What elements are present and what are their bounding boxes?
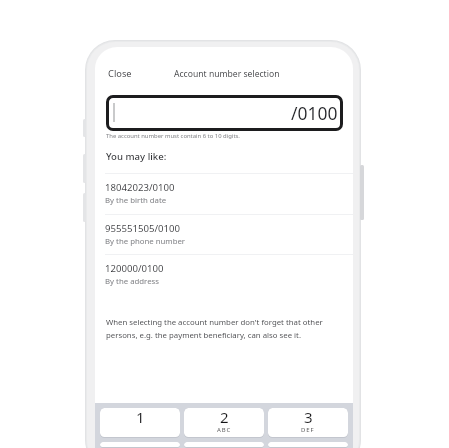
staticText: 955551505/0100 (105, 222, 180, 235)
staticText: By the address (105, 276, 160, 287)
staticText: By the birth date (105, 195, 167, 206)
staticText: 18042023/0100 (105, 181, 175, 194)
button[interactable]: 2 (184, 408, 264, 437)
button[interactable]: 5 (184, 442, 264, 447)
staticText: 120000/0100 (105, 262, 164, 275)
button[interactable]: 4 (100, 442, 180, 447)
staticText: 1 (136, 408, 145, 427)
staticText: /0100 (291, 101, 338, 125)
button[interactable]: 1 (100, 408, 180, 437)
staticText: Close (108, 67, 132, 80)
staticText: Account number selection (174, 68, 280, 80)
button[interactable]: Close (100, 61, 140, 86)
staticText: By the phone number (105, 236, 186, 247)
staticText: ABC (217, 426, 232, 434)
staticText: When selecting the account number don't … (106, 317, 323, 340)
staticText: You may like: (106, 150, 167, 163)
button[interactable]: 6 (268, 442, 348, 447)
staticText: The account number must contain 6 to 10 … (106, 132, 240, 140)
staticText: 2 (220, 408, 229, 427)
button[interactable]: 120000/0100 (95, 254, 353, 294)
staticText: DEF (301, 426, 315, 434)
button[interactable]: /0100 (106, 95, 343, 131)
button[interactable]: 18042023/0100 (95, 173, 353, 213)
staticText: 3 (304, 408, 313, 427)
button[interactable]: 3 (268, 408, 348, 437)
button[interactable]: 955551505/0100 (95, 214, 353, 254)
